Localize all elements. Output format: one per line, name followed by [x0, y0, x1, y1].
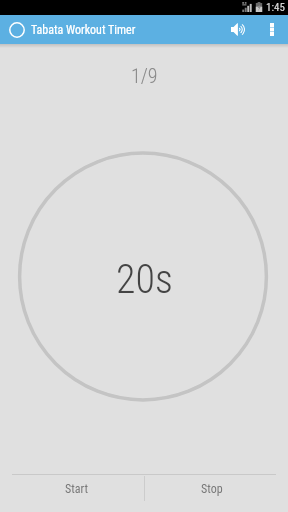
- button[interactable]: Stop: [144, 475, 288, 512]
- staticText: 1/9: [131, 64, 158, 87]
- staticText: 20s: [116, 256, 173, 303]
- staticText: Start: [65, 482, 89, 496]
- button[interactable]: More options: [259, 15, 284, 44]
- staticText: Tabata Workout Timer: [31, 23, 136, 37]
- button[interactable]: Start: [0, 475, 144, 512]
- staticText: 1:45: [266, 1, 285, 14]
- button[interactable]: Sound: [224, 15, 253, 44]
- staticText: Stop: [201, 482, 223, 496]
